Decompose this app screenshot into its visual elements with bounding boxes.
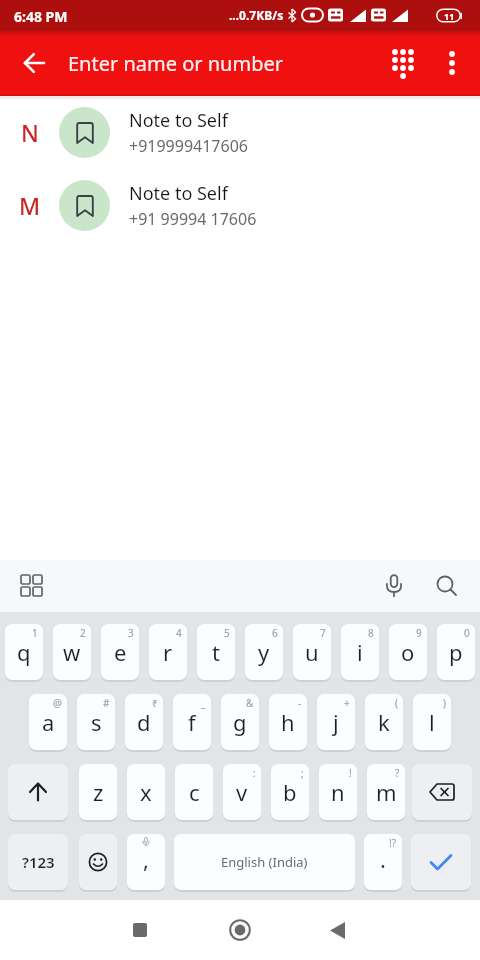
- staticText: u: [305, 637, 319, 667]
- button[interactable]: N: [0, 96, 480, 169]
- staticText: x: [140, 777, 152, 807]
- button[interactable]: ,: [127, 834, 165, 890]
- staticText: y: [258, 637, 270, 667]
- button[interactable]: 6: [245, 624, 283, 680]
- staticText: -: [298, 696, 302, 710]
- staticText: :: [253, 766, 256, 780]
- staticText: (: [395, 696, 398, 710]
- button[interactable]: (: [365, 694, 403, 750]
- staticText: b: [283, 777, 297, 807]
- staticText: d: [137, 707, 151, 737]
- button[interactable]: [8, 764, 68, 820]
- staticText: c: [189, 777, 200, 807]
- button[interactable]: ?: [367, 764, 405, 820]
- button[interactable]: 8: [341, 624, 379, 680]
- staticText: i: [357, 637, 363, 667]
- button[interactable]: [374, 560, 414, 612]
- staticText: j: [333, 707, 339, 737]
- button[interactable]: z: [79, 764, 117, 820]
- staticText: 2: [80, 626, 86, 640]
- staticText: ;: [301, 766, 304, 780]
- button[interactable]: [414, 560, 480, 612]
- button[interactable]: English (India): [174, 834, 355, 890]
- staticText: ?: [395, 766, 400, 780]
- staticText: ): [443, 696, 446, 710]
- staticText: ,: [143, 844, 149, 874]
- button[interactable]: 3: [101, 624, 139, 680]
- staticText: o: [401, 637, 415, 667]
- staticText: English (India): [221, 853, 308, 871]
- staticText: 1: [32, 626, 38, 640]
- button[interactable]: M: [0, 169, 480, 242]
- button[interactable]: [0, 560, 64, 612]
- button[interactable]: [424, 30, 480, 96]
- button[interactable]: !?: [364, 834, 402, 890]
- button[interactable]: ₹: [125, 694, 163, 750]
- button[interactable]: [110, 900, 170, 960]
- staticText: +: [344, 696, 350, 710]
- staticText: g: [233, 707, 247, 737]
- button[interactable]: 4: [149, 624, 187, 680]
- staticText: m: [376, 777, 397, 807]
- button[interactable]: &: [221, 694, 259, 750]
- button[interactable]: [210, 900, 270, 960]
- button[interactable]: [382, 30, 424, 96]
- button[interactable]: [307, 900, 367, 960]
- staticText: h: [281, 707, 295, 737]
- staticText: n: [331, 777, 345, 807]
- staticText: ?123: [22, 852, 55, 872]
- staticText: 4: [176, 626, 182, 640]
- button[interactable]: 9: [389, 624, 427, 680]
- button[interactable]: ): [413, 694, 451, 750]
- staticText: 7: [320, 626, 326, 640]
- staticText: q: [17, 637, 31, 667]
- staticText: 6:48 PM: [14, 7, 68, 26]
- staticText: l: [429, 707, 435, 737]
- staticText: 3: [128, 626, 134, 640]
- button[interactable]: 0: [437, 624, 475, 680]
- staticText: @: [53, 696, 62, 710]
- button[interactable]: [412, 764, 472, 820]
- button[interactable]: ;: [271, 764, 309, 820]
- staticText: v: [236, 777, 248, 807]
- button[interactable]: ?123: [8, 834, 68, 890]
- button[interactable]: [79, 834, 117, 890]
- button[interactable]: #: [77, 694, 115, 750]
- staticText: #: [103, 696, 110, 710]
- button[interactable]: _: [173, 694, 211, 750]
- staticText: k: [378, 707, 390, 737]
- button[interactable]: :: [223, 764, 261, 820]
- staticText: Enter name or number: [68, 50, 284, 77]
- button[interactable]: 5: [197, 624, 235, 680]
- button[interactable]: [411, 834, 471, 890]
- staticText: +919999417606: [129, 135, 248, 157]
- button[interactable]: c: [175, 764, 213, 820]
- staticText: 8: [368, 626, 374, 640]
- staticText: +91 99994 17606: [129, 208, 257, 230]
- button[interactable]: 2: [53, 624, 91, 680]
- staticText: N: [21, 117, 39, 148]
- button[interactable]: !: [319, 764, 357, 820]
- staticText: w: [63, 637, 81, 667]
- staticText: 5: [224, 626, 230, 640]
- button[interactable]: 7: [293, 624, 331, 680]
- staticText: M: [19, 190, 41, 221]
- staticText: r: [163, 637, 173, 667]
- staticText: Note to Self: [129, 108, 228, 133]
- staticText: 11: [444, 10, 455, 22]
- button[interactable]: 1: [5, 624, 43, 680]
- staticText: f: [188, 707, 196, 737]
- button[interactable]: +: [317, 694, 355, 750]
- button[interactable]: @: [29, 694, 67, 750]
- staticText: ...0.7KB/s: [229, 7, 284, 23]
- staticText: a: [42, 707, 55, 737]
- button[interactable]: -: [269, 694, 307, 750]
- staticText: s: [91, 707, 102, 737]
- button[interactable]: [0, 30, 58, 96]
- staticText: e: [114, 637, 127, 667]
- staticText: t: [212, 637, 220, 667]
- staticText: 9: [416, 626, 422, 640]
- staticText: !?: [389, 836, 397, 850]
- button[interactable]: x: [127, 764, 165, 820]
- staticText: z: [93, 777, 104, 807]
